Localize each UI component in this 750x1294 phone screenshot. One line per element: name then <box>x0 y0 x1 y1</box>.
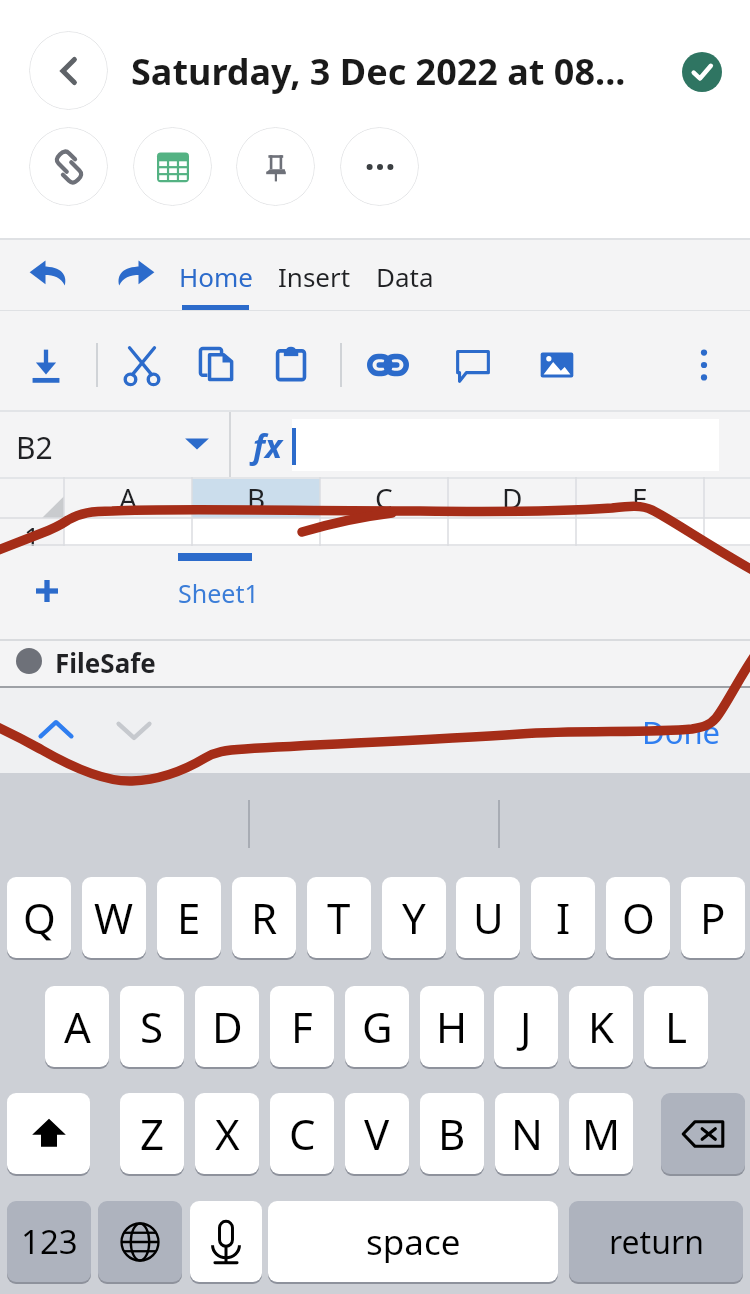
staticText: Y <box>402 889 426 946</box>
staticText: E <box>632 479 648 517</box>
staticText: P <box>700 889 726 946</box>
staticText: A <box>119 479 137 517</box>
button[interactable]: Spreadsheet <box>133 127 212 206</box>
staticText: V <box>364 1105 390 1162</box>
button[interactable]: Change keyboard <box>98 1201 182 1282</box>
button[interactable]: More options <box>678 339 730 391</box>
button[interactable]: Pin <box>236 127 315 206</box>
button[interactable]: return <box>569 1201 743 1282</box>
staticText: S <box>140 998 164 1055</box>
staticText: 1 <box>24 518 41 546</box>
staticText: C <box>289 1105 316 1162</box>
button[interactable]: I <box>531 877 595 958</box>
staticText: B <box>438 1105 466 1162</box>
staticText: F <box>291 998 313 1055</box>
staticText: 123 <box>21 1219 78 1264</box>
button[interactable]: Link <box>29 127 108 206</box>
button[interactable]: D <box>195 986 259 1067</box>
button[interactable]: Sheet1 <box>152 565 284 621</box>
button[interactable]: Next <box>106 702 162 758</box>
staticText: O <box>622 889 655 946</box>
button[interactable]: Q <box>7 877 71 958</box>
staticText: Z <box>140 1105 165 1162</box>
button[interactable]: C <box>270 1093 334 1174</box>
button[interactable]: Copy <box>191 339 243 391</box>
staticText: K <box>588 998 614 1055</box>
button[interactable]: Y <box>382 877 446 958</box>
button[interactable]: Cut <box>116 339 168 391</box>
staticText: N <box>511 1105 543 1162</box>
staticText: B2 <box>16 427 53 468</box>
staticText: return <box>609 1220 704 1264</box>
button[interactable]: U <box>456 877 520 958</box>
button[interactable]: Home <box>170 245 262 307</box>
button[interactable]: V <box>345 1093 409 1174</box>
button[interactable]: L <box>644 986 708 1067</box>
staticText: H <box>436 998 468 1055</box>
staticText: U <box>473 889 504 946</box>
staticText: I <box>556 889 571 946</box>
button[interactable]: J <box>494 986 558 1067</box>
button[interactable]: Backspace <box>661 1093 745 1174</box>
button[interactable]: space <box>268 1201 558 1282</box>
button[interactable]: F <box>270 986 334 1067</box>
button[interactable]: P <box>681 877 745 958</box>
staticText: Saturday, 3 Dec 2022 at 08... <box>131 47 626 96</box>
staticText: E <box>177 889 201 946</box>
button[interactable]: Done <box>631 706 731 758</box>
staticText: Data <box>376 259 434 294</box>
staticText: D <box>502 479 523 517</box>
button[interactable]: Z <box>120 1093 184 1174</box>
button[interactable]: W <box>82 877 146 958</box>
button[interactable]: Comment <box>447 339 499 391</box>
staticText: W <box>94 889 134 946</box>
button[interactable]: E <box>157 877 221 958</box>
button[interactable]: B <box>420 1093 484 1174</box>
button[interactable]: Expand <box>180 432 214 454</box>
staticText: Home <box>179 259 253 294</box>
staticText: Done <box>642 711 721 753</box>
staticText: D <box>212 998 243 1055</box>
staticText: space <box>366 1218 461 1266</box>
staticText: R <box>251 889 278 946</box>
button[interactable]: G <box>345 986 409 1067</box>
button[interactable]: H <box>420 986 484 1067</box>
button[interactable]: X <box>195 1093 259 1174</box>
button[interactable]: Insert image <box>531 339 583 391</box>
button[interactable]: Done <box>682 52 722 92</box>
button[interactable]: Previous <box>28 703 84 759</box>
button[interactable]: Redo <box>105 245 165 305</box>
staticText: G <box>362 998 393 1055</box>
staticText: L <box>665 998 688 1055</box>
button[interactable]: K <box>569 986 633 1067</box>
button[interactable]: M <box>569 1093 633 1174</box>
staticText: B <box>247 479 266 517</box>
staticText: X <box>215 1105 240 1162</box>
button[interactable]: More <box>340 127 419 206</box>
button[interactable]: Add sheet <box>19 563 75 619</box>
button[interactable]: N <box>495 1093 559 1174</box>
button[interactable]: Data <box>360 245 450 307</box>
button[interactable]: O <box>606 877 670 958</box>
button[interactable]: R <box>232 877 296 958</box>
button[interactable]: T <box>307 877 371 958</box>
button[interactable]: S <box>120 986 184 1067</box>
button[interactable]: Back <box>29 31 108 110</box>
button[interactable]: Download <box>20 339 72 391</box>
staticText: T <box>327 889 351 946</box>
staticText: Insert <box>278 259 351 294</box>
button[interactable]: A <box>45 986 109 1067</box>
staticText: Q <box>23 889 56 946</box>
staticText: Sheet1 <box>178 576 259 610</box>
staticText: A <box>64 998 91 1055</box>
button[interactable]: 123 <box>7 1201 91 1282</box>
button[interactable]: Dictate <box>190 1201 262 1282</box>
button[interactable]: Insert <box>268 245 360 307</box>
button[interactable]: Paste <box>266 339 318 391</box>
button[interactable]: Undo <box>19 245 79 305</box>
button[interactable]: Insert link <box>362 339 414 391</box>
staticText: fx <box>253 424 283 468</box>
staticText: FileSafe <box>55 645 156 680</box>
staticText: J <box>520 998 532 1055</box>
staticText: C <box>375 479 393 517</box>
